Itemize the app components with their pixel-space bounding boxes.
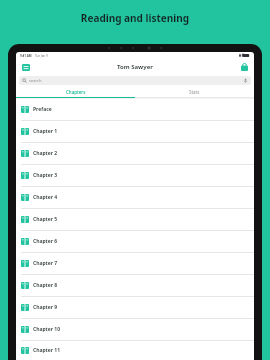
staticText: search [29, 78, 42, 83]
staticText: Chapter 2 [33, 150, 58, 157]
button[interactable]: Chapter 9 [16, 297, 254, 318]
button[interactable]: Chapter 5 [16, 209, 254, 230]
button[interactable]: Chapters [16, 86, 135, 97]
staticText: Chapter 11 [33, 347, 61, 354]
button[interactable]: Stats [135, 86, 254, 97]
button[interactable]: Menu [20, 61, 32, 73]
other: Voice search [243, 78, 248, 83]
staticText: Stats [189, 89, 200, 95]
staticText: Chapter 5 [33, 216, 58, 223]
staticText: Chapter 10 [33, 326, 61, 333]
staticText: Chapters [66, 89, 86, 95]
button[interactable]: Chapter 6 [16, 231, 254, 252]
button[interactable]: Chapter 7 [16, 253, 254, 274]
button[interactable]: Chapter 3 [16, 165, 254, 186]
staticText: 9:41 AM [20, 54, 32, 58]
button[interactable]: Chapter 2 [16, 143, 254, 164]
button[interactable]: Chapter 8 [16, 275, 254, 296]
button[interactable]: Chapter 11 [16, 341, 254, 360]
button[interactable]: Preface [16, 99, 254, 120]
staticText: Chapter 4 [33, 194, 58, 201]
staticText: Chapter 9 [33, 304, 58, 311]
button[interactable]: search [19, 76, 251, 85]
staticText: Chapter 6 [33, 238, 58, 245]
button[interactable]: Store [238, 61, 250, 73]
staticText: Chapter 3 [33, 172, 58, 179]
staticText: Tue Jan 9 [35, 54, 48, 58]
staticText: Preface [33, 106, 52, 113]
staticText: Chapter 7 [33, 260, 58, 267]
staticText: Tom Sawyer [117, 63, 153, 71]
staticText: Reading and listening [0, 11, 270, 25]
staticText: Chapter 1 [33, 128, 58, 135]
button[interactable]: Chapter 10 [16, 319, 254, 340]
staticText: Chapter 8 [33, 282, 58, 289]
button[interactable]: Chapter 1 [16, 121, 254, 142]
button[interactable]: Chapter 4 [16, 187, 254, 208]
